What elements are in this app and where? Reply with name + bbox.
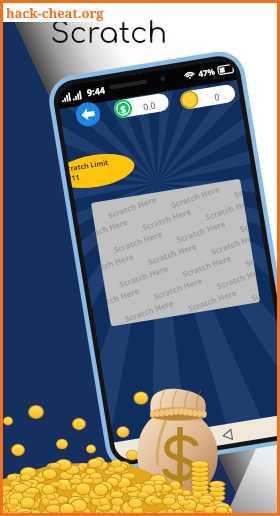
button[interactable]	[0, 0, 280, 516]
